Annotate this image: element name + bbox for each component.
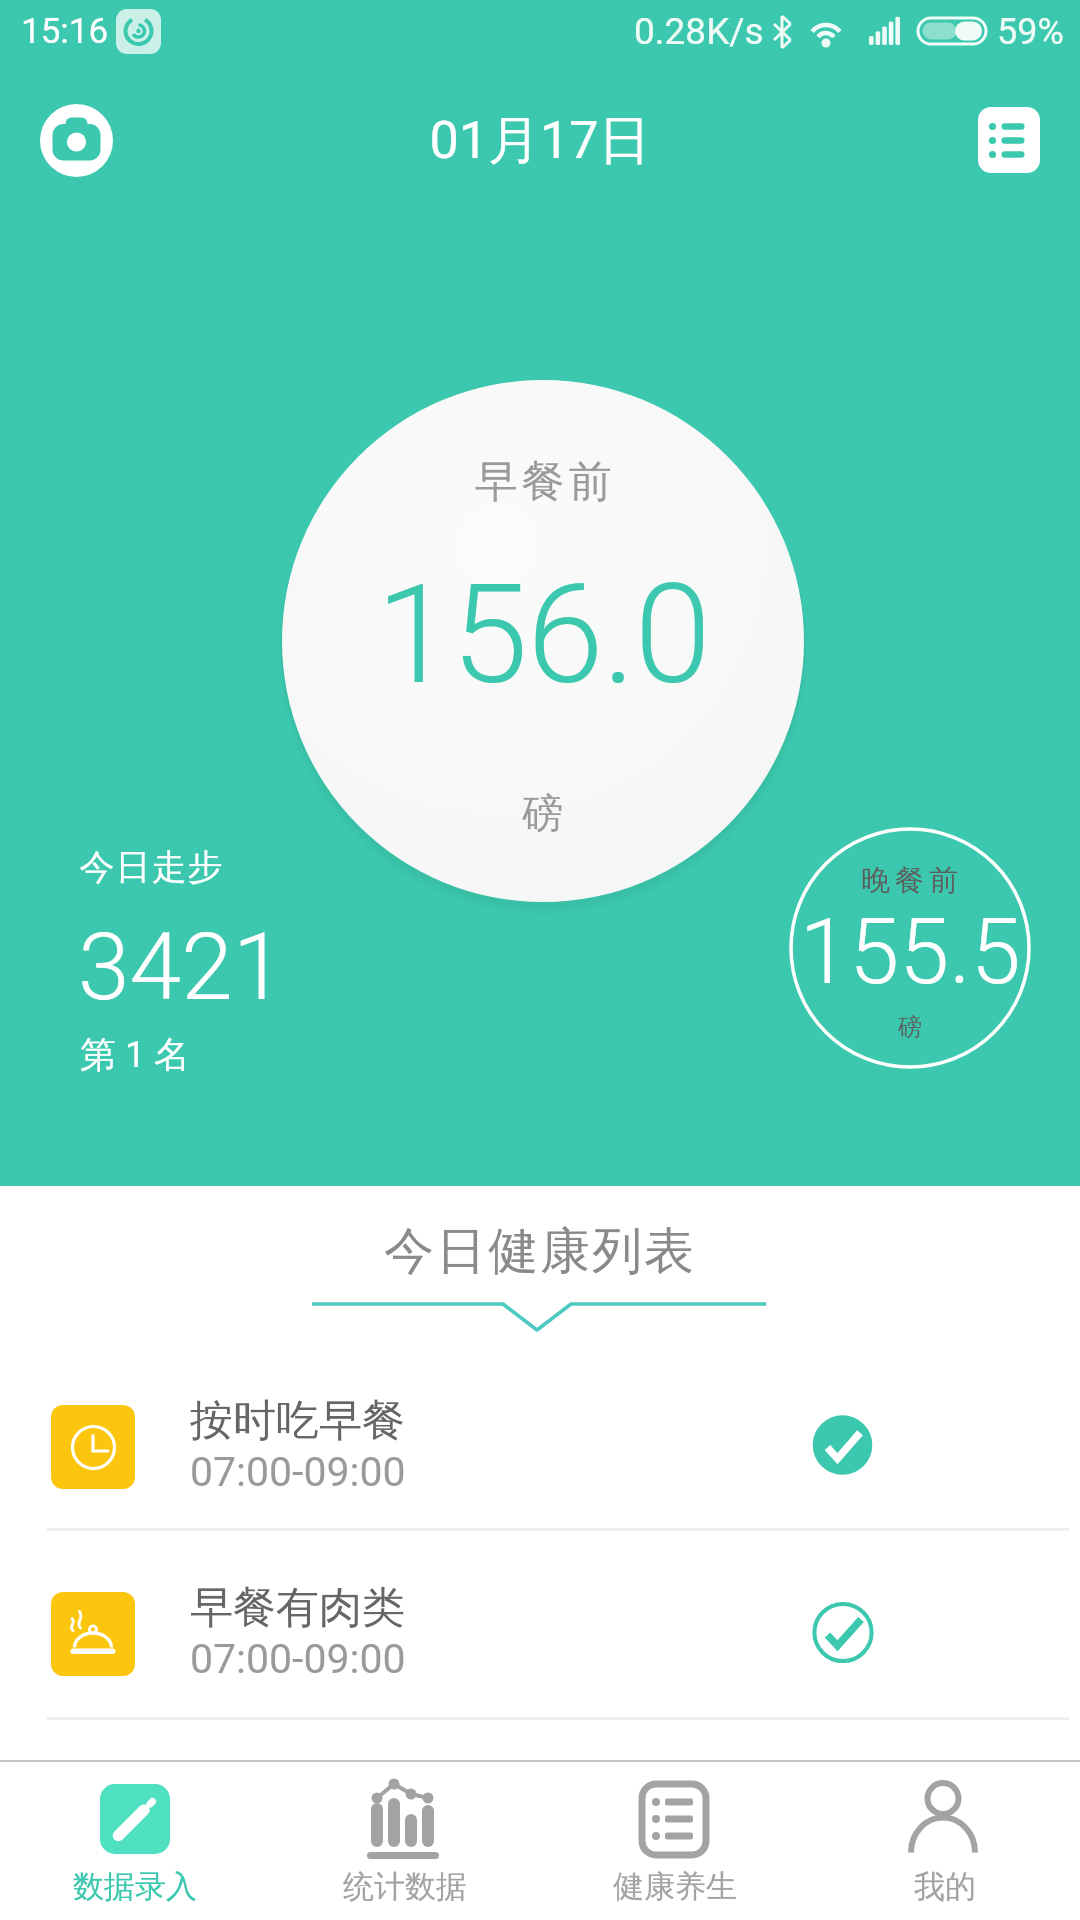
staticText: 我的 xyxy=(914,1867,976,1906)
staticText: 0.28K/s xyxy=(634,10,764,53)
button[interactable]: 数据录入 xyxy=(0,1760,270,1920)
staticText: 健康养生 xyxy=(613,1867,737,1906)
button[interactable]: 早餐有肉类 xyxy=(0,1580,1080,1708)
staticText: 统计数据 xyxy=(343,1867,467,1906)
staticText: 今日健康列表 xyxy=(0,1220,1080,1283)
staticText: 磅 xyxy=(789,1012,1031,1042)
button[interactable]: 我的 xyxy=(810,1760,1080,1920)
button[interactable] xyxy=(40,104,113,177)
button[interactable] xyxy=(978,107,1040,173)
staticText: 155.5 xyxy=(789,900,1031,1005)
staticText: 156.0 xyxy=(282,554,804,716)
button[interactable]: 健康养生 xyxy=(540,1760,810,1920)
staticText: 第 1 名 xyxy=(80,1032,191,1077)
staticText: 3421 xyxy=(78,913,285,1022)
staticText: 数据录入 xyxy=(73,1867,197,1906)
staticText: 晚餐前 xyxy=(791,862,1033,899)
staticText: 磅 xyxy=(282,788,804,840)
button[interactable]: 统计数据 xyxy=(270,1760,540,1920)
staticText: 07:00-09:00 xyxy=(190,1635,406,1683)
staticText: 早餐有肉类 xyxy=(190,1581,405,1635)
staticText: 早餐前 xyxy=(284,455,804,509)
staticText: 按时吃早餐 xyxy=(190,1394,405,1448)
staticText: 07:00-09:00 xyxy=(190,1448,406,1496)
staticText: 今日走步 xyxy=(79,845,223,889)
staticText: 15:16 xyxy=(21,11,109,52)
staticText: 01月17日 xyxy=(0,108,1080,174)
staticText: 59% xyxy=(997,11,1064,53)
button[interactable]: 按时吃早餐 xyxy=(0,1393,1080,1521)
